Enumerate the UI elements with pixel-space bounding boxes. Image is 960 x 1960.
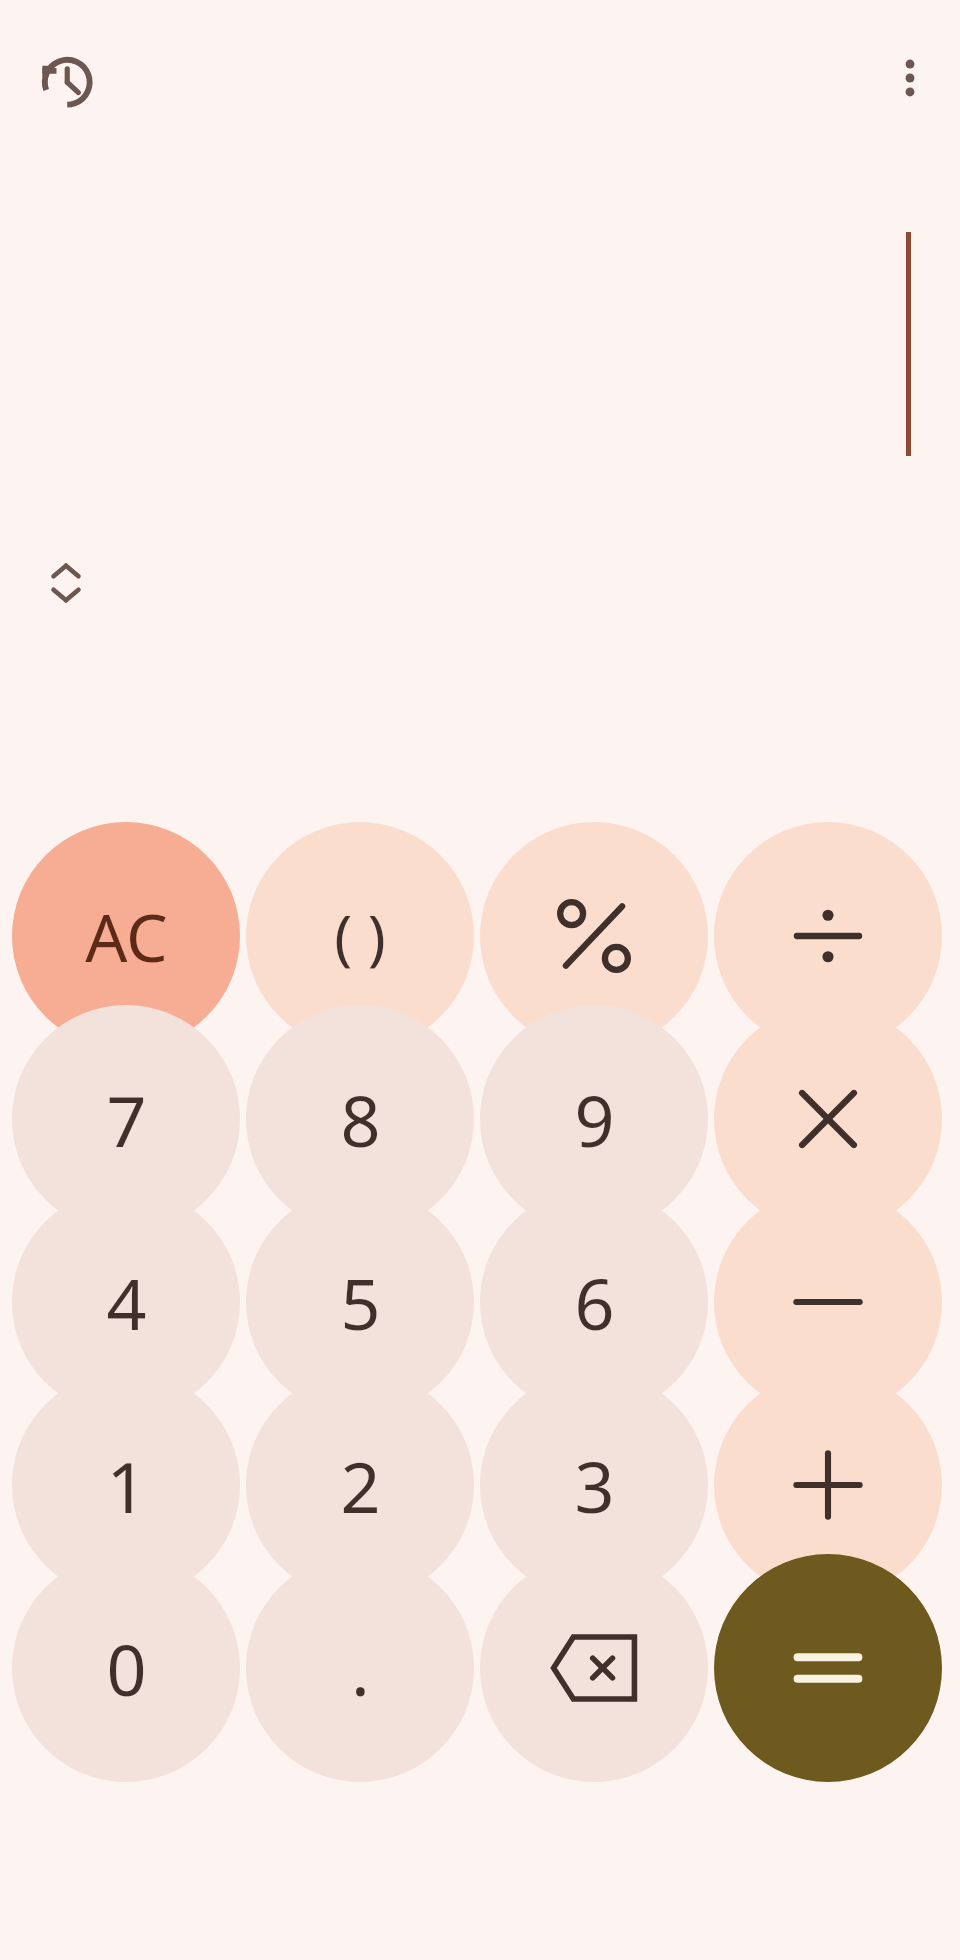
button[interactable]: 9 xyxy=(480,1005,708,1233)
button[interactable]: 3 xyxy=(480,1371,708,1599)
button[interactable]: Plus xyxy=(714,1371,942,1599)
button[interactable]: 4 xyxy=(12,1188,240,1416)
button[interactable]: Multiply xyxy=(714,1005,942,1233)
staticText: 2 xyxy=(340,1438,381,1533)
staticText: 7 xyxy=(106,1072,147,1167)
button[interactable]: 5 xyxy=(246,1188,474,1416)
button[interactable]: 8 xyxy=(246,1005,474,1233)
staticText: 6 xyxy=(574,1255,615,1350)
staticText: 4 xyxy=(106,1255,147,1350)
button[interactable]: 6 xyxy=(480,1188,708,1416)
button[interactable]: 2 xyxy=(246,1371,474,1599)
button[interactable]: Divide xyxy=(714,822,942,1050)
staticText: ( ) xyxy=(334,895,386,977)
button[interactable]: AC xyxy=(12,822,240,1050)
button[interactable]: Minus xyxy=(714,1188,942,1416)
staticText: 8 xyxy=(340,1072,381,1167)
staticText: 9 xyxy=(574,1072,615,1167)
staticText: 3 xyxy=(574,1438,615,1533)
staticText: 0 xyxy=(106,1621,147,1716)
button[interactable]: . xyxy=(246,1554,474,1782)
button[interactable]: More options xyxy=(865,33,955,123)
staticText: AC xyxy=(85,891,168,981)
button[interactable]: Percent xyxy=(480,822,708,1050)
button[interactable]: Backspace xyxy=(480,1554,708,1782)
button[interactable]: 7 xyxy=(12,1005,240,1233)
button[interactable]: ( ) xyxy=(246,822,474,1050)
staticText: 1 xyxy=(106,1438,147,1533)
button[interactable]: 0 xyxy=(12,1554,240,1782)
button[interactable]: 1 xyxy=(12,1371,240,1599)
staticText: 5 xyxy=(340,1255,381,1350)
button[interactable]: Expand history xyxy=(24,541,108,625)
button[interactable]: Equals xyxy=(714,1554,942,1782)
button[interactable]: History xyxy=(20,35,110,125)
staticText: . xyxy=(351,1621,370,1716)
